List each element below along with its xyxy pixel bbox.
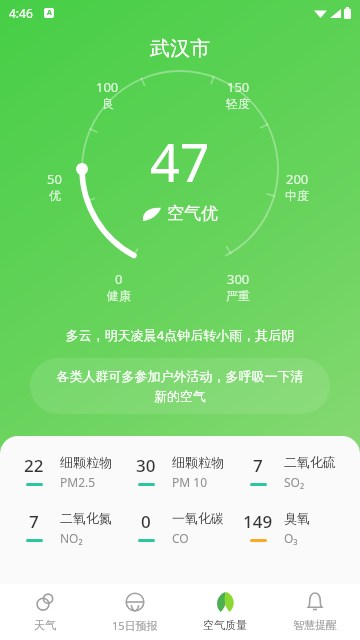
staticText: 100 xyxy=(96,78,119,96)
staticText: SO₂ xyxy=(284,474,305,490)
other: 智慧提醒 xyxy=(304,591,326,613)
staticText: 47 xyxy=(150,126,210,197)
staticText: 0 xyxy=(115,270,123,288)
staticText: 优 xyxy=(49,188,61,203)
staticText: 22 xyxy=(24,454,44,477)
staticText: 轻度 xyxy=(226,96,250,111)
button[interactable]: 7 xyxy=(16,510,128,546)
staticText: 7 xyxy=(29,510,39,533)
other: 天气 xyxy=(34,591,56,613)
staticText: 0 xyxy=(141,510,151,533)
staticText: 严重 xyxy=(226,288,250,303)
staticText: 7 xyxy=(253,454,263,477)
button[interactable]: 天气 xyxy=(0,584,90,640)
staticText: 多云，明天凌晨4点钟后转小雨，其后阴 xyxy=(0,326,360,344)
staticText: 空气优 xyxy=(167,203,218,224)
staticText: 300 xyxy=(227,270,250,288)
staticText: 二氧化硫 xyxy=(284,454,336,470)
staticText: 30 xyxy=(136,454,156,477)
button[interactable]: 智慧提醒 xyxy=(270,584,360,640)
staticText: 二氧化氮 xyxy=(60,510,112,526)
staticText: 4:46 xyxy=(9,5,33,21)
staticText: 天气 xyxy=(34,618,56,632)
staticText: 149 xyxy=(243,510,273,533)
staticText: PM 10 xyxy=(172,474,207,490)
staticText: CO xyxy=(172,530,189,546)
staticText: A xyxy=(47,8,52,18)
staticText: 150 xyxy=(227,78,250,96)
staticText: 健康 xyxy=(107,288,131,303)
button[interactable]: 空气质量 xyxy=(180,584,270,640)
staticText: NO₂ xyxy=(60,530,83,546)
staticText: 臭氧 xyxy=(284,510,310,526)
staticText: 200 xyxy=(286,170,309,188)
staticText: PM2.5 xyxy=(60,474,96,490)
staticText: 良 xyxy=(102,96,114,111)
button[interactable]: 各类人群可多参加户外活动，多呼吸一下清新的空气 xyxy=(30,358,330,414)
other: 15日预报 xyxy=(124,591,146,613)
staticText: 细颗粒物 xyxy=(60,454,112,470)
staticText: 细颗粒物 xyxy=(172,454,224,470)
staticText: 智慧提醒 xyxy=(293,618,337,632)
button[interactable]: 30 xyxy=(128,454,240,490)
button[interactable]: 0 xyxy=(128,510,240,546)
staticText: O₃ xyxy=(284,530,298,546)
button[interactable]: 149 xyxy=(240,510,352,546)
button[interactable]: 7 xyxy=(240,454,352,490)
staticText: 中度 xyxy=(285,188,309,203)
staticText: 空气质量 xyxy=(203,618,247,632)
button[interactable]: 15日预报 xyxy=(90,584,180,640)
staticText: 武汉市 xyxy=(150,36,210,61)
staticText: 各类人群可多参加户外活动，多呼吸一下清新的空气 xyxy=(54,368,306,405)
other: 空气质量 xyxy=(214,591,236,613)
staticText: 一氧化碳 xyxy=(172,510,224,526)
staticText: 50 xyxy=(47,170,62,188)
button[interactable]: 22 xyxy=(16,454,128,490)
staticText: 15日预报 xyxy=(112,618,158,633)
